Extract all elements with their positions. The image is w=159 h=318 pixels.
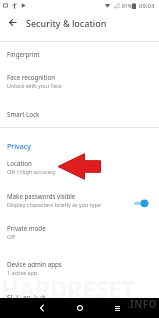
staticText: 81%: [122, 3, 132, 10]
staticText: Fingerprint: [7, 50, 40, 58]
button[interactable]: Make passwords visible: [0, 185, 159, 214]
staticText: Security & location: [26, 17, 107, 29]
staticText: Smart Lock: [7, 110, 40, 118]
staticText: Privacy: [7, 142, 31, 152]
button[interactable]: Recent apps: [107, 298, 127, 318]
staticText: SIM card lock: [7, 293, 46, 301]
staticText: Make passwords visible: [7, 192, 76, 200]
staticText: .INFO: [127, 297, 157, 311]
button[interactable]: Device admin apps: [0, 253, 159, 282]
button[interactable]: Home: [70, 298, 90, 318]
staticText: 1 active app: [7, 269, 38, 276]
button[interactable]: Location: [0, 152, 159, 181]
button[interactable]: Back: [4, 14, 21, 31]
button[interactable]: Fingerprint: [0, 43, 159, 65]
button[interactable]: Private mode: [0, 217, 159, 246]
button[interactable]: Back: [32, 298, 52, 318]
button[interactable]: Smart Lock: [0, 103, 159, 125]
staticText: ON / High accuracy: [7, 168, 56, 175]
button[interactable]: Face recognition: [0, 66, 159, 95]
button[interactable]: Make passwords visible toggle: [132, 193, 154, 213]
staticText: Off: [7, 233, 15, 240]
staticText: Private mode: [7, 224, 46, 232]
staticText: Location: [7, 159, 32, 167]
staticText: Face recognition: [7, 73, 56, 81]
staticText: Device admin apps: [7, 260, 62, 268]
staticText: Unlock with your face: [7, 82, 62, 89]
staticText: 09:03: [139, 2, 155, 10]
staticText: Display characters briefly as you type: [7, 201, 101, 208]
staticText: HARDRESET: [1, 273, 136, 304]
button[interactable]: SIM card lock: [0, 286, 159, 308]
